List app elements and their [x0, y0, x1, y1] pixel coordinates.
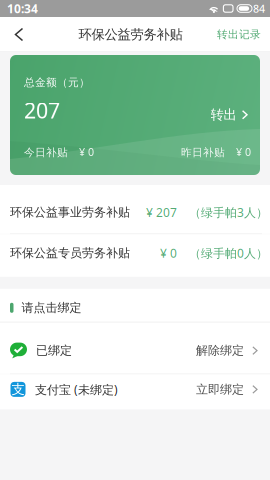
staticText: 207	[24, 96, 60, 124]
staticText: 支	[11, 381, 24, 398]
staticText: 总金额（元）	[24, 76, 90, 89]
staticText: 解除绑定	[196, 343, 244, 358]
button[interactable]: 环保公益事业劳务补贴	[0, 185, 270, 233]
staticText: ¥ 0 （绿手帕0人）	[160, 245, 268, 261]
staticText: ¥ 207 （绿手帕3人）	[146, 204, 268, 220]
staticText: 立即绑定	[196, 382, 244, 397]
staticText: 今日补贴 ¥ 0	[24, 145, 94, 159]
staticText: 环保公益专员劳务补贴	[10, 246, 130, 260]
button[interactable]: 环保公益专员劳务补贴	[0, 234, 270, 277]
button[interactable]: 支	[0, 374, 270, 409]
staticText: 支付宝 (未绑定)	[35, 381, 118, 397]
staticText: 昨日补贴 ¥ 0	[181, 145, 251, 159]
staticText: 请点击绑定	[21, 300, 81, 315]
staticText: 转出	[211, 107, 237, 123]
button[interactable]: 返回	[0, 17, 34, 52]
button[interactable]: 转出记录	[217, 17, 270, 52]
button[interactable]: 转出	[211, 98, 251, 123]
button[interactable]: 已绑定	[0, 323, 270, 374]
staticText: 84	[253, 1, 265, 16]
staticText: 环保公益事业劳务补贴	[10, 205, 130, 220]
staticText: 环保公益劳务补贴	[78, 26, 182, 43]
staticText: 已绑定	[36, 343, 72, 358]
staticText: 10:34	[7, 0, 38, 16]
staticText: 转出记录	[217, 28, 261, 41]
